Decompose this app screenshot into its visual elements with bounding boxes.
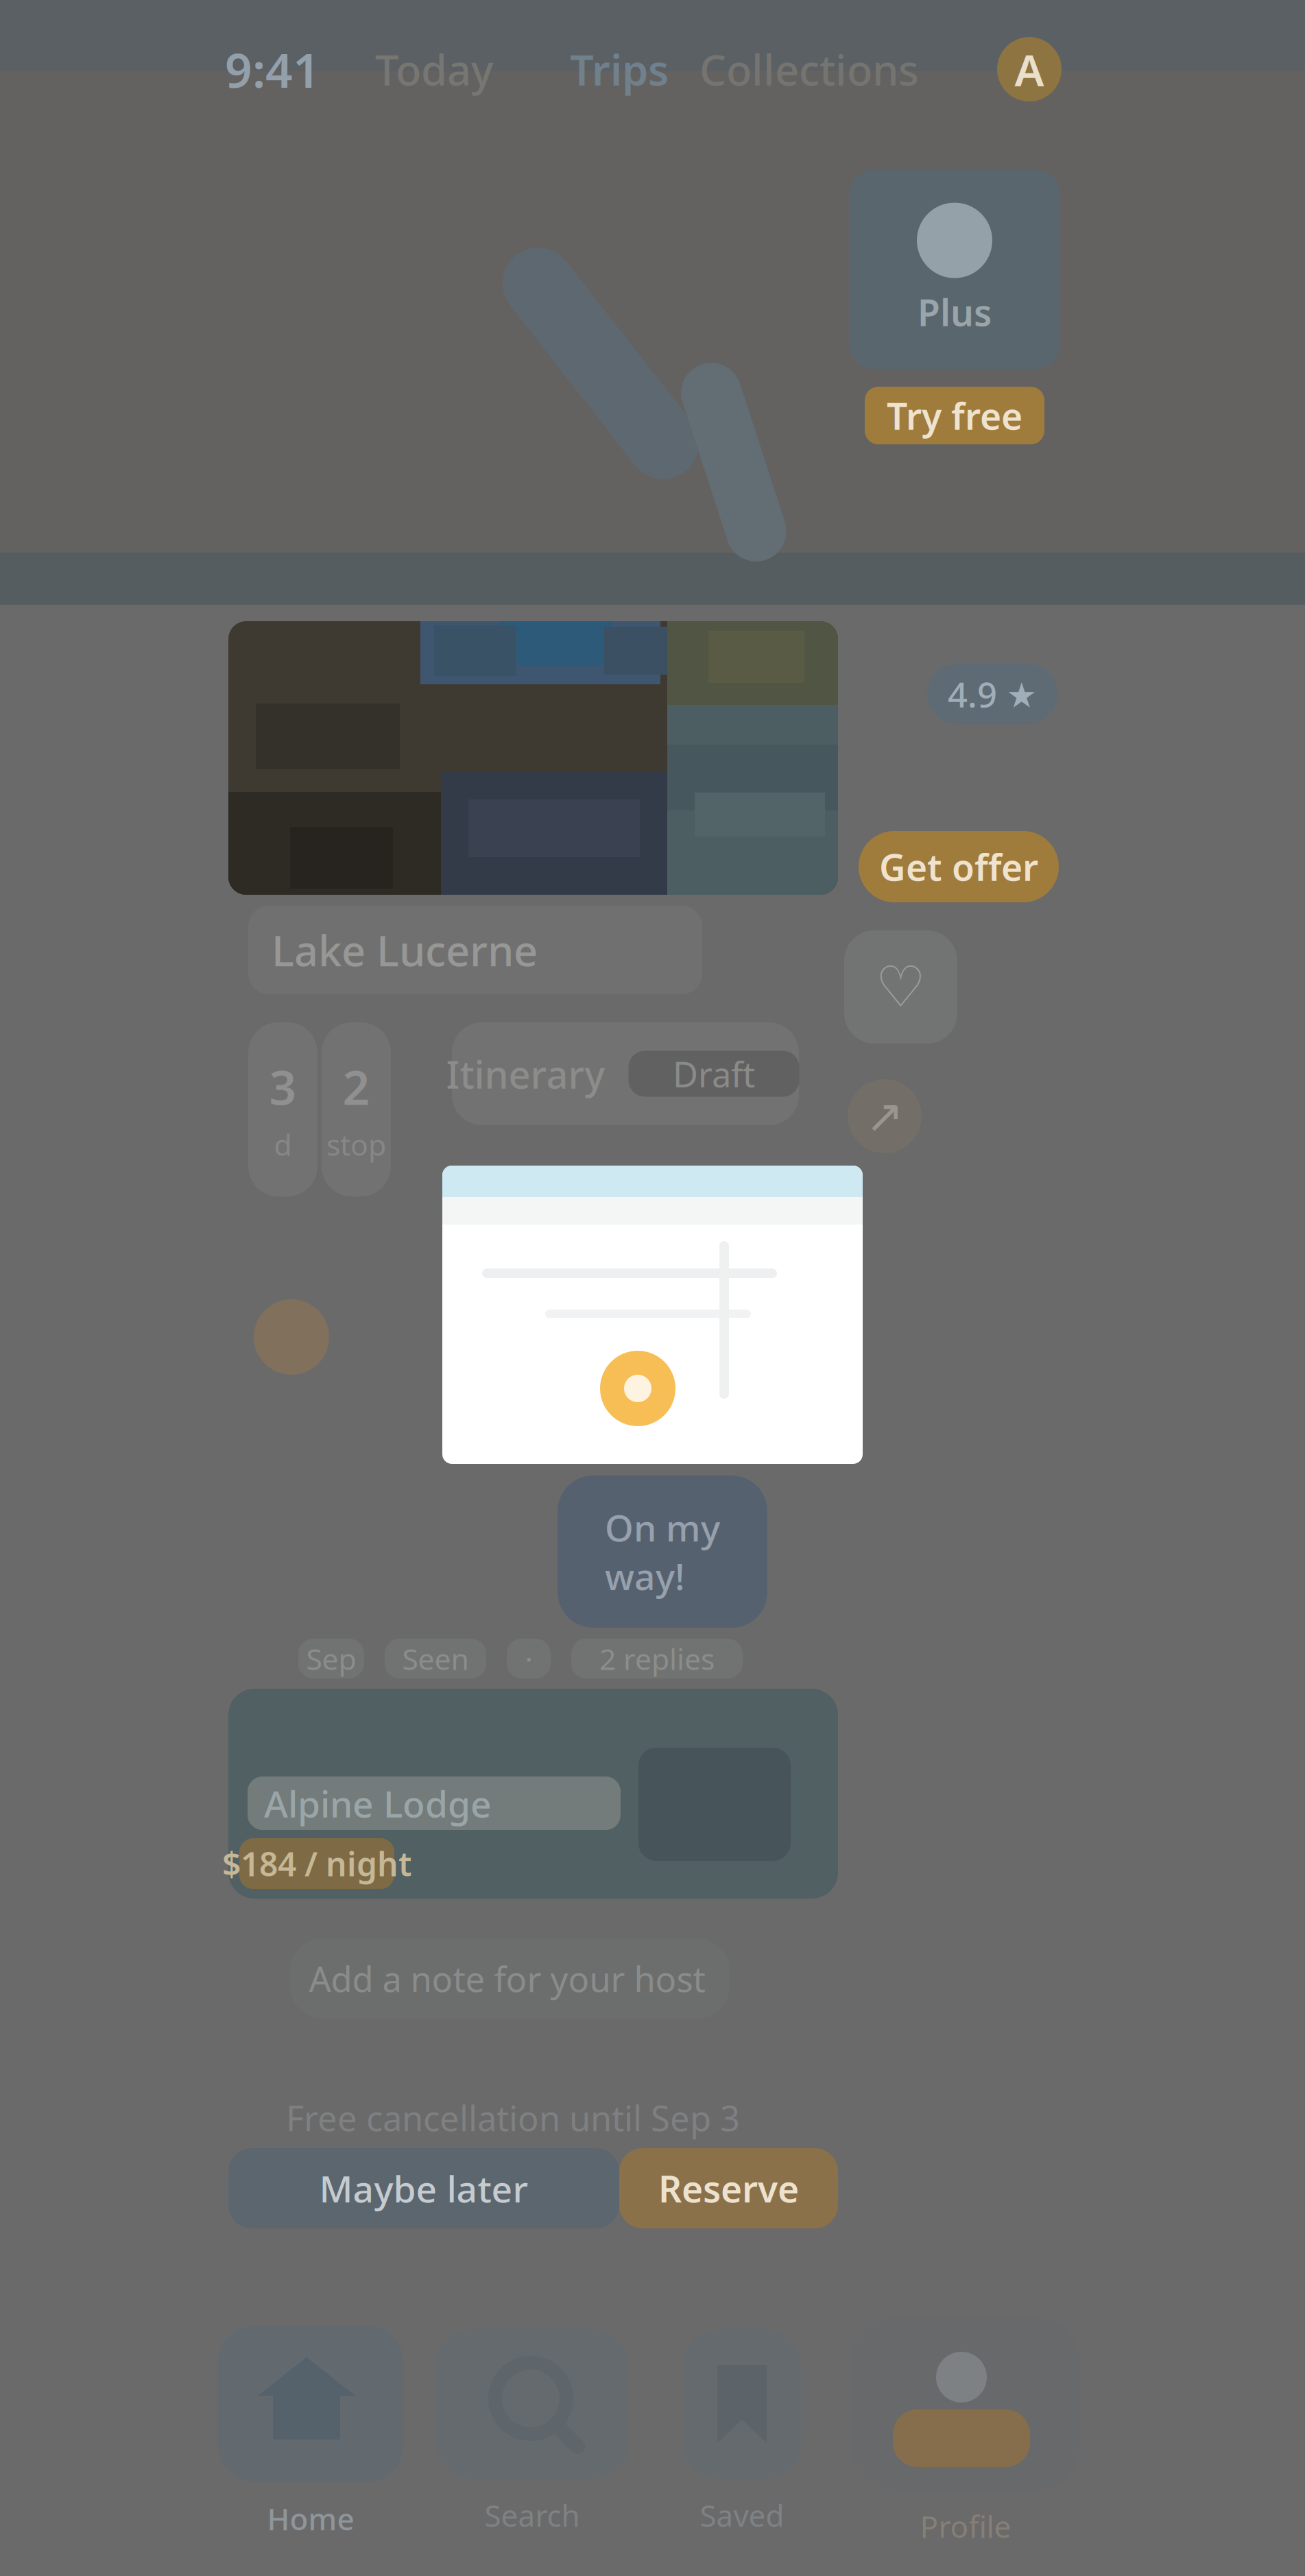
staticText: ♡ [875,955,926,1019]
staticText: 9:41 [225,38,320,101]
staticText: Maybe later [319,2164,528,2213]
staticText: Free cancellation until Sep 3 [286,2095,740,2141]
staticText: Seen [402,1639,469,1678]
staticText: 2 [343,1055,370,1118]
button[interactable]: Profile [852,2318,1079,2546]
staticText: Lake Lucerne [272,922,538,978]
button[interactable]: Try free [865,387,1044,444]
staticText: Plus [918,288,992,336]
staticText: Add a note for your host [309,1955,705,2002]
button[interactable]: Today [375,41,500,97]
button[interactable]: Reserve [619,2148,838,2228]
staticText: Sep [306,1639,356,1678]
staticText: Get offer [879,842,1038,891]
staticText: Try free [887,391,1022,440]
button[interactable]: Collections [699,41,959,97]
staticText: Profile [920,2506,1011,2546]
staticText: stop [326,1125,386,1164]
staticText: Draft [673,1051,755,1097]
button[interactable]: Save [844,930,957,1044]
staticText: On my way! [605,1503,720,1600]
staticText: Itinerary [446,1048,605,1099]
staticText: Alpine Lodge [264,1779,492,1828]
button[interactable]: 4.9 ★ [927,664,1057,724]
staticText: 2 replies [599,1639,715,1678]
staticText: Today [375,41,493,97]
staticText: d [274,1125,292,1164]
button[interactable]: Home [217,2326,404,2539]
staticText: A [1015,40,1044,98]
staticText: 4.9 ★ [948,671,1037,717]
staticText: Search [484,2495,580,2535]
button[interactable]: Account [990,37,1069,101]
button[interactable]: Maybe later [228,2148,619,2228]
staticText: Trips [570,41,669,97]
staticText: Home [267,2499,354,2539]
staticText: ↗ [865,1090,904,1142]
staticText: 3 [269,1055,297,1118]
staticText: Collections [699,41,919,97]
staticText: · [525,1639,532,1678]
button[interactable]: Saved [683,2329,801,2535]
button[interactable]: Get offer [859,831,1059,902]
button[interactable]: Search [436,2329,628,2535]
button[interactable]: Share [848,1079,922,1153]
staticText: $184 / night [222,1842,411,1885]
button[interactable]: Trips [570,41,665,97]
staticText: Saved [700,2495,784,2535]
staticText: Reserve [658,2164,799,2213]
